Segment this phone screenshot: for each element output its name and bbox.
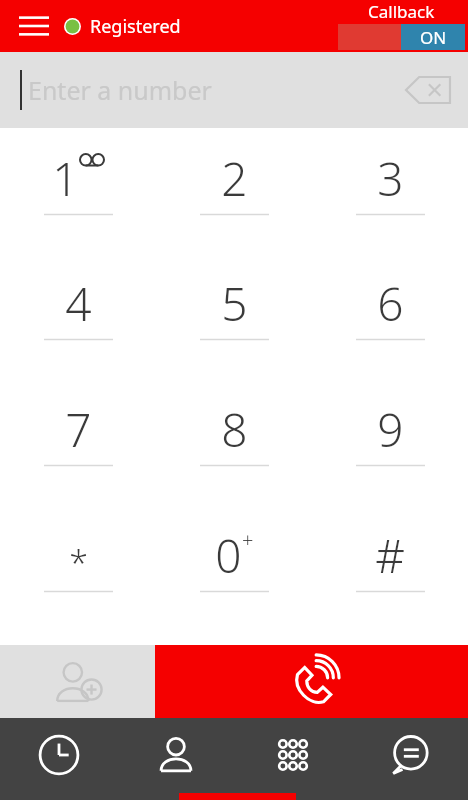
button[interactable]: Call [155,645,468,718]
button[interactable]: # [312,519,468,645]
staticText: 4 [65,272,92,335]
staticText: # [375,524,405,587]
staticText: 7 [65,398,92,461]
button[interactable]: 8 [156,393,312,519]
staticText: Registered [90,14,181,39]
staticText: 1 [52,147,79,210]
staticText: Callback [368,0,435,23]
button[interactable]: Enter a number [0,52,468,128]
staticText: 8 [221,398,248,461]
staticText: 2 [221,147,248,210]
staticText: 5 [221,272,248,335]
button[interactable]: 7 [0,393,156,519]
button[interactable]: 5 [156,267,312,393]
staticText: ON [420,26,447,49]
button[interactable]: Contacts [117,718,234,800]
button[interactable]: 6 [312,267,468,393]
staticText: 0 [215,524,242,587]
staticText: * [69,540,88,586]
button[interactable]: Add contact [0,645,155,718]
staticText: 3 [377,147,404,210]
button[interactable]: 9 [312,393,468,519]
button[interactable]: 1 [0,142,156,267]
button[interactable]: 0 [156,519,312,645]
button[interactable]: Dialpad [234,718,351,800]
button[interactable]: 2 [156,142,312,267]
button[interactable]: Messages [351,718,468,800]
staticText: 9 [377,398,404,461]
button[interactable]: * [0,519,156,645]
button[interactable]: 3 [312,142,468,267]
button[interactable]: Recent call log [0,718,117,800]
staticText: Enter a number [28,73,212,107]
staticText: 6 [377,272,404,335]
button[interactable]: Backspace [402,64,454,116]
button[interactable]: 4 [0,267,156,393]
button[interactable]: Callback toggle [338,24,465,50]
button[interactable]: Menu [12,4,56,48]
staticText: + [242,526,254,553]
